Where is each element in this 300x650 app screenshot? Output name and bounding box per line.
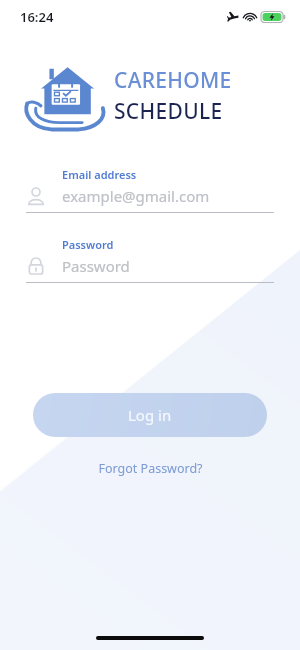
button[interactable]: Password [0,237,300,283]
staticText: 16:24 [20,8,54,26]
other: CareHome Schedule logo [22,58,108,134]
staticText: Log in [128,405,172,425]
staticText: Forgot Password? [98,460,203,477]
staticText: Email address [62,167,137,182]
staticText: Password [62,256,130,276]
staticText: SCHEDULE [114,97,223,126]
button[interactable]: Email address [0,167,300,213]
button[interactable]: Log in [33,393,267,437]
staticText: Password [62,237,114,252]
button[interactable]: Forgot Password? [86,454,215,483]
staticText: example@gmail.com [62,186,210,206]
staticText: CAREHOME [114,66,232,95]
